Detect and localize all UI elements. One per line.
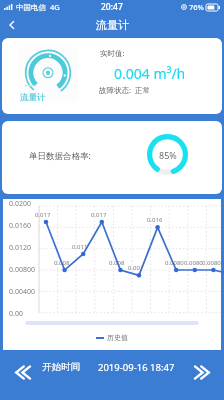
- staticText: 0.00: [9, 309, 37, 319]
- button[interactable]: 开始时间: [42, 361, 80, 373]
- staticText: 流量计: [20, 92, 46, 103]
- staticText: 0.008: [109, 259, 125, 267]
- staticText: 0.0080: [184, 259, 203, 267]
- staticText: 0.004 m³/h: [114, 64, 186, 83]
- staticText: 历史值: [107, 333, 128, 342]
- staticText: 0.017: [91, 211, 107, 219]
- staticText: 实时值:: [100, 48, 125, 58]
- staticText: 故障状态: 正常: [99, 85, 150, 95]
- staticText: 4G: [50, 2, 60, 12]
- staticText: 单日数据合格率:: [29, 150, 91, 162]
- staticText: 0.00400: [9, 287, 37, 297]
- staticText: 0.0120: [9, 243, 37, 253]
- staticText: 0.016: [147, 216, 163, 224]
- staticText: 0.008: [54, 259, 70, 267]
- staticText: 76%: [189, 2, 204, 12]
- button[interactable]: Previous: [8, 359, 35, 386]
- staticText: 0.0160: [9, 221, 37, 231]
- staticText: 20:47: [101, 1, 123, 13]
- staticText: 0.0200: [9, 199, 37, 209]
- staticText: 流量计: [96, 18, 129, 32]
- staticText: 中国电信: [16, 3, 46, 12]
- staticText: 0.017: [35, 211, 51, 219]
- staticText: 0.0080: [202, 259, 221, 267]
- staticText: 0.0080: [165, 259, 184, 267]
- staticText: 0.011: [72, 243, 88, 251]
- staticText: 0.00800: [9, 265, 37, 275]
- staticText: 85%: [159, 149, 177, 161]
- staticText: 0.007: [128, 264, 144, 272]
- button[interactable]: Next: [190, 359, 217, 386]
- button[interactable]: 2019-09-16 18:47: [98, 361, 175, 374]
- button[interactable]: Back: [0, 13, 24, 37]
